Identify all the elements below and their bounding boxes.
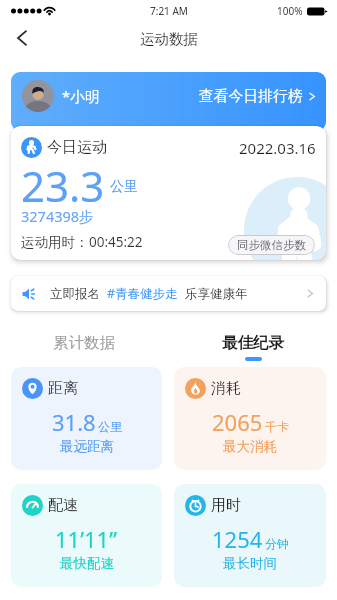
staticText: 31.8	[52, 407, 96, 437]
button[interactable]: 最佳纪录	[168, 333, 337, 363]
button[interactable]: 用时	[174, 484, 326, 587]
staticText: 运动数据	[140, 30, 198, 48]
staticText: 今日运动	[47, 138, 107, 157]
staticText: 公里	[98, 419, 122, 434]
staticText: 最佳纪录	[222, 333, 284, 353]
staticText: 2065	[212, 407, 263, 437]
staticText: 距离	[48, 379, 78, 398]
staticText: 同步微信步数	[237, 238, 306, 252]
staticText: 最快配速	[60, 555, 114, 572]
button[interactable]: Back	[6, 22, 38, 54]
button[interactable]: 累计数据	[0, 333, 168, 363]
staticText: 立即报名	[50, 286, 100, 302]
staticText: 乐享健康年	[185, 286, 248, 302]
staticText: *小明	[62, 86, 100, 106]
staticText: 11’11”	[55, 524, 118, 554]
staticText: 7:21 AM	[150, 4, 188, 18]
staticText: 运动用时：	[21, 234, 89, 251]
button[interactable]: *小明	[11, 72, 326, 131]
button[interactable]: 消耗	[174, 367, 326, 470]
button[interactable]: 距离	[11, 367, 162, 470]
staticText: 2022.03.16	[239, 138, 316, 158]
staticText: 3274398步	[21, 206, 94, 226]
staticText: 最大消耗	[223, 438, 277, 455]
staticText: 1254	[212, 524, 263, 554]
staticText: #青春健步走	[107, 285, 178, 302]
staticText: 23.3	[21, 157, 105, 214]
staticText: 配速	[48, 496, 78, 515]
staticText: 用时	[211, 496, 241, 515]
button[interactable]: 今日运动	[11, 126, 326, 260]
other: More	[306, 289, 315, 298]
staticText: 分钟	[265, 536, 289, 551]
staticText: 累计数据	[53, 333, 115, 353]
staticText: 公里	[110, 178, 138, 196]
staticText: 最长时间	[223, 555, 277, 572]
button[interactable]: 配速	[11, 484, 162, 587]
staticText: 100%	[277, 4, 303, 18]
button[interactable]: 立即报名	[11, 276, 326, 311]
staticText: 查看今日排行榜	[199, 87, 303, 106]
staticText: 00:45:22	[89, 233, 143, 251]
staticText: 最远距离	[60, 438, 114, 455]
staticText: 消耗	[211, 379, 241, 398]
staticText: 千卡	[265, 419, 289, 434]
button[interactable]: 同步微信步数	[228, 235, 315, 255]
